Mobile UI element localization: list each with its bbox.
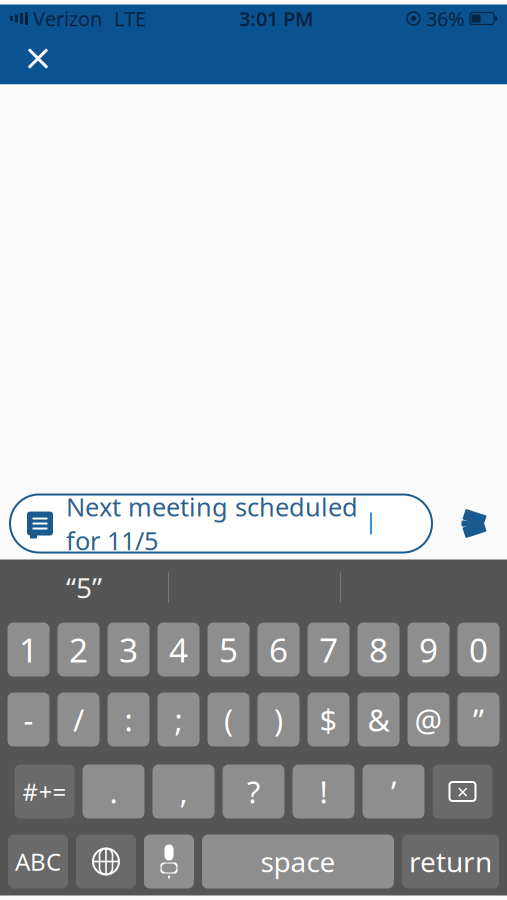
button[interactable]: ? xyxy=(222,764,284,818)
staticText: @ xyxy=(414,699,442,740)
staticText: : xyxy=(124,699,132,740)
staticText: LTE xyxy=(114,5,146,32)
staticText: 3:01 PM xyxy=(239,5,314,32)
staticText: . xyxy=(109,771,117,812)
button[interactable]: “5” xyxy=(0,559,168,615)
staticText: ( xyxy=(224,699,233,740)
staticText: 0 xyxy=(469,627,488,672)
button[interactable]: ’ xyxy=(362,764,424,818)
button[interactable]: & xyxy=(357,692,399,746)
button[interactable]: #+= xyxy=(14,764,74,818)
staticText: Next meeting scheduled for 11/5 xyxy=(66,490,358,557)
button[interactable]: ABC xyxy=(8,834,68,888)
staticText: ! xyxy=(319,771,327,812)
staticText: ” xyxy=(473,699,484,740)
staticText: #+= xyxy=(22,776,66,807)
staticText: ; xyxy=(174,699,182,740)
staticText: 5 xyxy=(219,627,238,672)
staticText: $ xyxy=(319,699,337,740)
button[interactable]: $ xyxy=(307,692,349,746)
button[interactable]: Next keyboard xyxy=(76,834,136,888)
staticText: 9 xyxy=(419,627,438,672)
button[interactable]: . xyxy=(82,764,144,818)
button[interactable]: Next meeting scheduled for 11/5 xyxy=(10,494,432,552)
button[interactable]: return xyxy=(402,834,499,888)
staticText: - xyxy=(23,699,33,740)
button[interactable]: 7 xyxy=(307,622,349,676)
staticText: 1 xyxy=(19,627,38,672)
staticText: / xyxy=(73,699,84,740)
button[interactable]: 1 xyxy=(7,622,49,676)
staticText: , xyxy=(179,771,187,812)
staticText: ’ xyxy=(391,771,396,812)
staticText: “5” xyxy=(66,569,102,606)
staticText: space xyxy=(260,843,335,880)
button[interactable]: 3 xyxy=(107,622,149,676)
button[interactable]: ( xyxy=(207,692,249,746)
button[interactable]: / xyxy=(57,692,99,746)
staticText: ? xyxy=(247,771,260,812)
button[interactable]: 2 xyxy=(57,622,99,676)
button[interactable]: 4 xyxy=(157,622,199,676)
button[interactable]: 5 xyxy=(207,622,249,676)
button[interactable]: - xyxy=(7,692,49,746)
staticText: × xyxy=(457,778,468,805)
staticText: ABC xyxy=(15,846,61,877)
button[interactable]: ) xyxy=(257,692,299,746)
button[interactable]: Send xyxy=(447,494,502,552)
button[interactable]: Close xyxy=(10,32,66,84)
button[interactable]: 8 xyxy=(357,622,399,676)
staticText: 2 xyxy=(69,627,88,672)
staticText: 8 xyxy=(369,627,388,672)
staticText: Verizon xyxy=(33,5,102,32)
staticText: 7 xyxy=(319,627,338,672)
staticText: ) xyxy=(274,699,283,740)
button[interactable]: @ xyxy=(407,692,449,746)
staticText: 6 xyxy=(269,627,288,672)
button[interactable]: 0 xyxy=(457,622,499,676)
button[interactable]: Delete xyxy=(432,764,492,818)
button[interactable]: ” xyxy=(457,692,499,746)
button[interactable]: ! xyxy=(292,764,354,818)
staticText: 36% xyxy=(426,5,465,32)
button[interactable]: 6 xyxy=(257,622,299,676)
button[interactable]: space xyxy=(202,834,394,888)
staticText: return xyxy=(409,843,492,880)
staticText: & xyxy=(367,699,389,740)
staticText: 3 xyxy=(119,627,138,672)
button[interactable]: ; xyxy=(157,692,199,746)
button[interactable]: : xyxy=(107,692,149,746)
button[interactable]: , xyxy=(152,764,214,818)
staticText: 4 xyxy=(169,627,188,672)
button[interactable]: 9 xyxy=(407,622,449,676)
button[interactable]: Dictation xyxy=(144,834,194,888)
